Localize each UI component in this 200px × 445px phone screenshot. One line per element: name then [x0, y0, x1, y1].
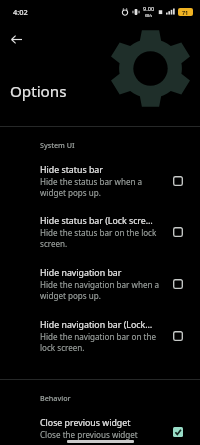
staticText: Options [10, 81, 67, 102]
staticText: Close the previous widget [40, 429, 138, 440]
button[interactable]: Hide navigation bar (Lock… [0, 319, 200, 365]
staticText: Hide navigation bar (Lock… [40, 319, 153, 331]
button[interactable]: Hide navigation bar [0, 267, 200, 313]
staticText: Hide the status bar on the lock screen. [40, 227, 160, 249]
button[interactable]: Toggle [168, 171, 188, 191]
staticText: Behavior [40, 393, 71, 403]
staticText: Hide navigation bar [40, 267, 122, 279]
button[interactable]: Hide status bar (Lock scre… [0, 215, 200, 261]
staticText: Hide the navigation bar when a widget po… [40, 279, 160, 301]
staticText: 4:02 [13, 7, 28, 17]
button[interactable]: Back [5, 28, 27, 50]
button[interactable]: Toggle [168, 274, 188, 294]
staticText: Hide status bar (Lock scre… [40, 215, 153, 227]
staticText: 71 [182, 9, 189, 16]
button[interactable]: Toggle [168, 326, 188, 346]
button[interactable]: Close previous widget [0, 417, 200, 445]
button[interactable]: Hide status bar [0, 164, 200, 210]
button[interactable]: Toggle [168, 422, 188, 442]
staticText: Close previous widget [40, 417, 131, 429]
staticText: Hide status bar [40, 164, 103, 176]
staticText: 9.00 [143, 5, 155, 13]
staticText: Hide the status bar when a widget pops u… [40, 176, 160, 198]
button[interactable]: Toggle [168, 222, 188, 242]
staticText: System UI [40, 140, 75, 150]
staticText: KB/s [145, 13, 153, 18]
staticText: Hide the navigation bar on the lock scre… [40, 331, 160, 353]
